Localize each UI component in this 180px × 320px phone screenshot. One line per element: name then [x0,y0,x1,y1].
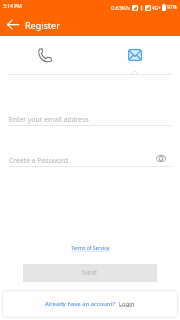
staticText: 97% [167,4,177,11]
button[interactable]: Phone [0,36,90,75]
button[interactable]: Enter your email address [9,114,171,125]
button[interactable]: Back [2,13,23,34]
staticText: Enter your email address [9,115,89,124]
staticText: Create a Password [9,156,68,165]
staticText: 0.63K/s [111,4,130,11]
staticText: 4G+ [152,5,161,11]
staticText: 3:14 PM [3,3,22,10]
staticText: Next [82,268,98,278]
button[interactable]: Terms of Service [71,245,110,252]
button[interactable]: Email [90,36,180,75]
staticText: Already have an account? [45,300,116,308]
button[interactable]: Already have an account? [2,290,178,318]
button[interactable]: Show password [155,153,167,164]
staticText: Register [25,19,60,31]
button[interactable]: Create a Password [9,155,171,166]
button[interactable]: Next [23,264,157,282]
staticText: Login [119,300,135,308]
